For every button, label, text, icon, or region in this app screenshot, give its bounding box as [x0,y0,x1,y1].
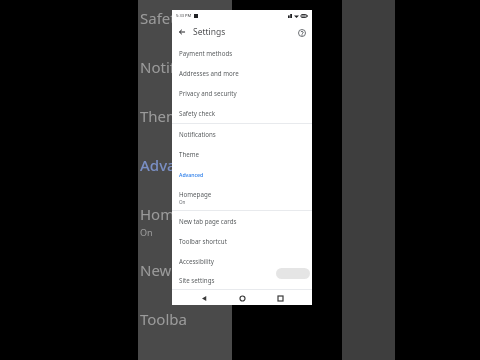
staticText: Safety check [179,109,216,117]
button[interactable]: Site settings [172,271,312,289]
button[interactable]: Notifications [172,124,312,144]
staticText: Advanced [179,171,204,178]
button[interactable]: Accessibility [172,251,312,271]
staticText: Addresses and more [179,69,239,77]
button[interactable]: Advanced [172,164,312,184]
button[interactable]: Recent apps [274,292,286,304]
button[interactable]: Theme [172,144,312,164]
staticText: Accessibility [179,257,214,265]
staticText: Theme [140,106,189,126]
staticText: New tab page cards [179,217,237,225]
staticText: Advanc [140,155,193,175]
staticText: New ta [140,260,190,280]
staticText: Privacy and security [179,89,237,97]
button[interactable]: Privacy and security [172,83,312,103]
button[interactable]: Payment methods [172,43,312,63]
staticText: Homepage [179,190,212,198]
button[interactable]: Back [198,292,210,304]
button[interactable]: Safety check [172,103,312,123]
button[interactable]: Toolbar shortcut [172,231,312,251]
staticText: On [179,199,186,205]
staticText: Theme [179,150,200,158]
button[interactable]: Homepage [172,184,312,210]
button[interactable]: Addresses and more [172,63,312,83]
staticText: Notific [140,57,186,77]
staticText: On [140,226,153,238]
button[interactable]: Back [175,25,189,39]
staticText: Payment methods [179,49,233,57]
staticText: Homep [140,204,192,224]
staticText: 5:33 PM [176,13,192,18]
button[interactable]: Help and feedback [295,26,308,39]
staticText: Toolba [140,309,187,329]
staticText: Settings [193,26,226,38]
staticText: Toolbar shortcut [179,237,227,245]
button[interactable]: New tab page cards [172,211,312,231]
staticText: Safety [140,8,184,28]
staticText: Notifications [179,130,216,138]
button[interactable]: Home [236,292,248,304]
staticText: Site settings [179,276,215,284]
